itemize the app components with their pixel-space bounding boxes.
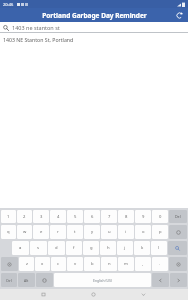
- button[interactable]: c: [51, 257, 66, 271]
- staticText: l: [158, 245, 160, 251]
- button[interactable]: m: [118, 257, 134, 271]
- staticText: English (US): [93, 278, 112, 283]
- staticText: 3: [40, 214, 43, 220]
- button[interactable]: b: [84, 257, 100, 271]
- button[interactable]: l: [151, 241, 167, 255]
- staticText: 6: [91, 214, 94, 220]
- staticText: w: [23, 229, 27, 235]
- button[interactable]: r: [50, 225, 66, 239]
- staticText: e: [40, 229, 43, 235]
- staticText: g: [90, 245, 93, 251]
- staticText: z: [26, 261, 28, 267]
- button[interactable]: 7: [101, 210, 117, 223]
- button[interactable]: f: [66, 241, 82, 255]
- staticText: Alt: [24, 278, 29, 283]
- button[interactable]: n: [101, 257, 117, 271]
- button[interactable]: p: [152, 225, 168, 239]
- staticText: h: [107, 245, 110, 251]
- staticText: 2: [23, 214, 26, 220]
- button[interactable]: 4: [50, 210, 66, 223]
- button[interactable]: 9: [135, 210, 151, 223]
- staticText: 0: [159, 214, 162, 220]
- button[interactable]: 1: [1, 210, 16, 223]
- button[interactable]: x: [35, 257, 50, 271]
- button[interactable]: Previous: [152, 273, 169, 287]
- staticText: 4: [57, 214, 60, 220]
- button[interactable]: Alt: [18, 273, 35, 287]
- button[interactable]: 0: [152, 210, 168, 223]
- staticText: j: [124, 245, 126, 251]
- staticText: a: [19, 245, 22, 251]
- staticText: Del: [175, 214, 181, 219]
- button[interactable]: Search: [168, 241, 187, 255]
- staticText: c: [57, 261, 60, 267]
- staticText: 20:46: [3, 2, 14, 7]
- button[interactable]: v: [67, 257, 83, 271]
- button[interactable]: t: [67, 225, 83, 239]
- staticText: b: [91, 261, 94, 267]
- staticText: 1: [7, 214, 10, 220]
- button[interactable]: 8: [118, 210, 134, 223]
- staticText: r: [57, 229, 59, 235]
- button[interactable]: z: [19, 257, 34, 271]
- staticText: m: [124, 261, 128, 267]
- button[interactable]: 2: [17, 210, 32, 223]
- staticText: 1403 ne stanton st: [12, 24, 60, 31]
- button[interactable]: d: [48, 241, 65, 255]
- staticText: v: [74, 261, 77, 267]
- staticText: q: [7, 229, 10, 235]
- button[interactable]: o: [135, 225, 151, 239]
- staticText: k: [141, 245, 144, 251]
- button[interactable]: q: [1, 225, 16, 239]
- staticText: Portland Garbage Day Reminder: [42, 11, 147, 20]
- button[interactable]: 6: [84, 210, 100, 223]
- staticText: x: [41, 261, 44, 267]
- staticText: y: [91, 229, 94, 235]
- staticText: ,: [142, 261, 144, 267]
- staticText: 5: [74, 214, 77, 220]
- staticText: 8: [125, 214, 128, 220]
- button[interactable]: ,: [135, 257, 151, 271]
- staticText: p: [159, 229, 162, 235]
- button[interactable]: Ctrl: [1, 273, 17, 287]
- button[interactable]: Backspace: [169, 225, 187, 239]
- button[interactable]: Home: [88, 289, 99, 300]
- button[interactable]: j: [117, 241, 133, 255]
- button[interactable]: Refresh: [174, 10, 184, 20]
- button[interactable]: h: [100, 241, 116, 255]
- staticText: 9: [142, 214, 145, 220]
- button[interactable]: u: [101, 225, 117, 239]
- button[interactable]: 1403 NE Stanton St, Portland: [0, 33, 188, 45]
- button[interactable]: Del: [169, 210, 187, 223]
- staticText: s: [37, 245, 40, 251]
- staticText: i: [125, 229, 127, 235]
- button[interactable]: 1403 ne stanton st: [0, 22, 188, 33]
- button[interactable]: y: [84, 225, 100, 239]
- staticText: o: [142, 229, 145, 235]
- button[interactable]: Emoji: [36, 273, 53, 287]
- button[interactable]: Recents: [38, 289, 49, 300]
- button[interactable]: e: [33, 225, 49, 239]
- button[interactable]: i: [118, 225, 134, 239]
- staticText: .: [159, 261, 161, 267]
- staticText: t: [74, 229, 76, 235]
- button[interactable]: English (US): [54, 273, 151, 287]
- button[interactable]: s: [30, 241, 47, 255]
- button[interactable]: a: [12, 241, 29, 255]
- button[interactable]: g: [83, 241, 99, 255]
- button[interactable]: 3: [33, 210, 49, 223]
- button[interactable]: Shift: [1, 257, 18, 271]
- staticText: d: [55, 245, 58, 251]
- button[interactable]: Next: [170, 273, 187, 287]
- button[interactable]: w: [17, 225, 32, 239]
- button[interactable]: 5: [67, 210, 83, 223]
- button[interactable]: k: [134, 241, 150, 255]
- staticText: n: [108, 261, 111, 267]
- staticText: Ctrl: [6, 278, 12, 283]
- button[interactable]: Shift: [169, 257, 187, 271]
- button[interactable]: Back: [138, 289, 149, 300]
- staticText: f: [73, 245, 75, 251]
- staticText: 1403 NE Stanton St, Portland: [3, 36, 74, 43]
- staticText: u: [108, 229, 111, 235]
